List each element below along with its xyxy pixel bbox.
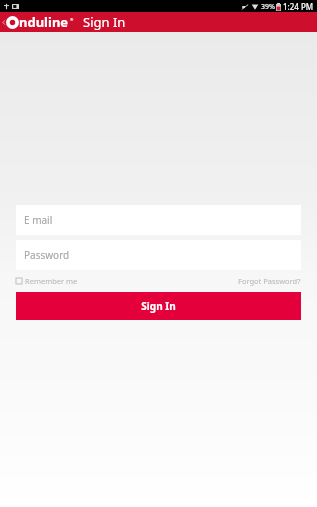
- staticText: E mail: [24, 213, 53, 227]
- staticText: nduline: [19, 13, 69, 31]
- staticText: Sign In: [141, 299, 176, 313]
- staticText: Password: [24, 248, 70, 262]
- button[interactable]: Sign In: [16, 292, 301, 320]
- button[interactable]: E mail: [16, 205, 301, 235]
- button[interactable]: Back: [0, 12, 7, 32]
- button[interactable]: Remember me: [16, 274, 78, 288]
- button[interactable]: Forgot Password?: [238, 274, 301, 288]
- staticText: Sign In: [83, 13, 126, 31]
- staticText: Remember me: [25, 276, 78, 286]
- staticText: ®: [70, 17, 74, 22]
- staticText: 39%: [261, 2, 275, 12]
- button[interactable]: Password: [16, 240, 301, 270]
- staticText: 1:24 PM: [283, 1, 314, 12]
